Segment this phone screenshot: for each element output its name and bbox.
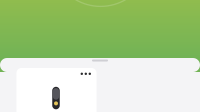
- button[interactable]: More options: [77, 69, 95, 79]
